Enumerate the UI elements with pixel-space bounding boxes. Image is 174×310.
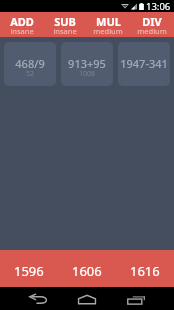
- button[interactable]: Home: [77, 291, 97, 307]
- button[interactable]: ADD: [0, 12, 43, 37]
- staticText: 52: [26, 69, 35, 79]
- staticText: 1616: [130, 262, 160, 280]
- button[interactable]: 468/9: [4, 42, 56, 86]
- staticText: 1008: [79, 69, 96, 79]
- staticText: 1606: [72, 262, 102, 280]
- staticText: DIV: [142, 14, 162, 29]
- button[interactable]: Back: [29, 291, 48, 307]
- button[interactable]: 1606: [58, 250, 116, 287]
- button[interactable]: 913+95: [61, 42, 113, 86]
- staticText: 468/9: [15, 56, 45, 71]
- staticText: medium: [137, 26, 167, 36]
- staticText: medium: [93, 26, 123, 36]
- staticText: SUB: [54, 14, 76, 29]
- staticText: ADD: [10, 14, 34, 29]
- staticText: insane: [53, 26, 77, 36]
- staticText: 13:06: [146, 0, 171, 12]
- button[interactable]: Recent apps: [126, 291, 146, 307]
- staticText: insane: [10, 26, 34, 36]
- button[interactable]: 1947-341: [118, 42, 170, 86]
- button[interactable]: DIV: [130, 12, 174, 37]
- staticText: MUL: [96, 14, 121, 29]
- button[interactable]: 1616: [116, 250, 174, 287]
- button[interactable]: MUL: [86, 12, 130, 37]
- staticText: 1596: [14, 262, 44, 280]
- button[interactable]: 1596: [0, 250, 58, 287]
- staticText: 913+95: [68, 56, 106, 71]
- button[interactable]: SUB: [43, 12, 86, 37]
- staticText: 1947-341: [120, 56, 168, 71]
